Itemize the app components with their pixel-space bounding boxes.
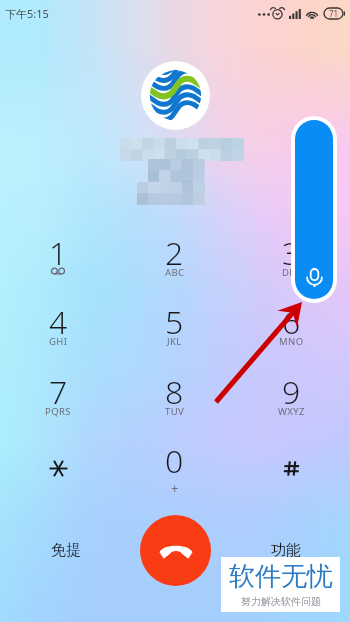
- button[interactable]: 免提: [46, 538, 86, 562]
- button[interactable]: 功能: [266, 538, 306, 562]
- staticText: 免提: [51, 541, 81, 560]
- button[interactable]: 2: [116, 231, 233, 294]
- staticText: 71: [329, 8, 339, 19]
- button[interactable]: 3: [233, 231, 350, 294]
- button[interactable]: 0: [116, 439, 233, 502]
- staticText: 8: [165, 370, 184, 414]
- button[interactable]: 5: [116, 300, 233, 363]
- staticText: 功能: [271, 541, 301, 560]
- staticText: TUV: [165, 405, 185, 418]
- button[interactable]: 1: [0, 231, 116, 294]
- staticText: 努力解决软件问题: [241, 595, 321, 608]
- staticText: 6: [282, 300, 301, 344]
- staticText: 0: [165, 439, 184, 483]
- button[interactable]: Voice assistant: [295, 120, 333, 299]
- staticText: 9: [282, 370, 301, 414]
- button[interactable]: [233, 439, 350, 502]
- staticText: 5: [165, 300, 184, 344]
- staticText: ABC: [165, 266, 185, 279]
- staticText: 1: [49, 231, 68, 275]
- staticText: 2: [165, 231, 184, 275]
- button[interactable]: 8: [116, 370, 233, 433]
- staticText: JKL: [167, 335, 182, 348]
- staticText: +: [171, 479, 179, 497]
- staticText: 软件无忧: [229, 560, 333, 593]
- staticText: GHI: [49, 335, 68, 348]
- button[interactable]: 9: [233, 370, 350, 433]
- staticText: PQRS: [45, 405, 71, 418]
- staticText: 7: [49, 370, 68, 414]
- staticText: WXYZ: [278, 405, 305, 418]
- button[interactable]: [0, 439, 116, 502]
- button[interactable]: 6: [233, 300, 350, 363]
- button[interactable]: 4: [0, 300, 116, 363]
- staticText: DEF: [282, 266, 301, 279]
- staticText: 下午5:15: [5, 6, 49, 21]
- button[interactable]: 7: [0, 370, 116, 433]
- staticText: 3: [282, 231, 301, 275]
- staticText: 4: [49, 300, 68, 344]
- staticText: MNO: [279, 335, 304, 348]
- button[interactable]: End call: [140, 515, 211, 586]
